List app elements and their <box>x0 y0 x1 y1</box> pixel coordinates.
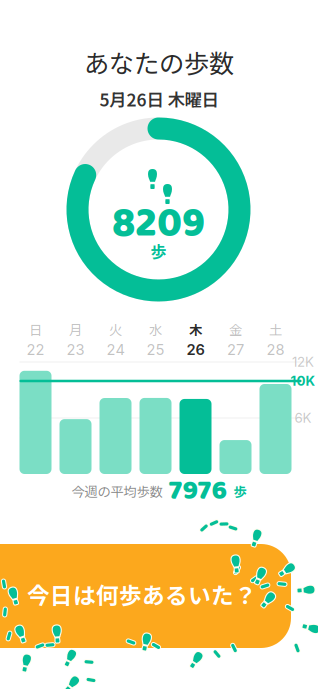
staticText: 25 <box>146 341 164 358</box>
staticText: 10K <box>290 373 315 389</box>
staticText: 12K <box>292 354 314 370</box>
staticText: 7976 <box>168 469 227 513</box>
staticText: 6K <box>294 410 311 426</box>
staticText: 今日は何歩あるいた？ <box>27 578 257 610</box>
button[interactable]: 今日は何歩あるいた？ <box>0 0 318 689</box>
staticText: 5月26日 木曜日 <box>99 86 218 112</box>
staticText: 歩 <box>150 239 166 263</box>
staticText: 28 <box>266 341 284 358</box>
staticText: 23 <box>66 341 84 358</box>
staticText: 金 <box>229 319 242 339</box>
staticText: 22 <box>26 341 44 358</box>
staticText: 月 <box>69 319 82 339</box>
staticText: 水 <box>149 319 162 339</box>
staticText: 今週の平均歩数 <box>71 481 162 501</box>
staticText: 27 <box>227 341 244 358</box>
staticText: 歩 <box>233 481 246 501</box>
staticText: 土 <box>269 319 282 339</box>
staticText: 26 <box>186 341 204 358</box>
staticText: あなたの歩数 <box>84 44 234 80</box>
staticText: 木 <box>189 319 202 339</box>
staticText: 8209 <box>112 191 205 257</box>
staticText: 火 <box>109 319 122 339</box>
staticText: 24 <box>106 341 124 358</box>
staticText: 日 <box>29 319 42 339</box>
